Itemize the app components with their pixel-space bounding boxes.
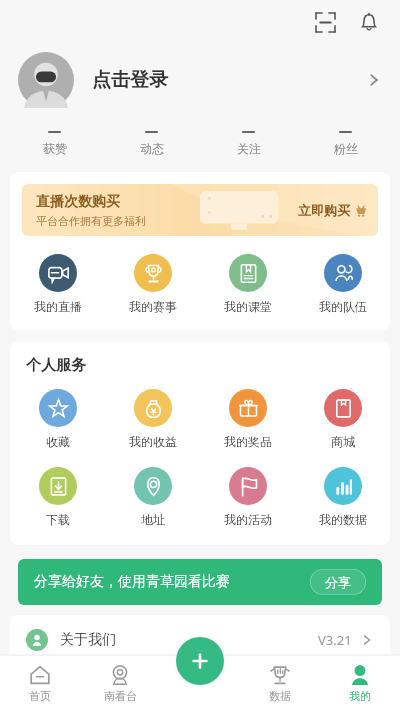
staticText: 我的 xyxy=(349,689,371,703)
staticText: 分享 xyxy=(325,574,351,590)
button[interactable]: 分享给好友，使用青草园看比赛 xyxy=(18,559,382,605)
staticText: 首页 xyxy=(29,689,51,703)
button[interactable]: 我的 xyxy=(320,655,400,711)
button[interactable]: 数据 xyxy=(240,655,320,711)
staticText: 我的收益 xyxy=(129,434,177,449)
button[interactable]: 分享 xyxy=(310,569,366,595)
button[interactable]: Notifications xyxy=(352,5,386,39)
button[interactable]: 地址 xyxy=(105,465,200,529)
staticText: 立即购买 xyxy=(298,202,350,218)
button[interactable]: 收藏 xyxy=(10,387,105,451)
staticText: 直播次数购买 xyxy=(36,193,120,211)
button[interactable]: 首页 xyxy=(0,655,80,711)
button[interactable]: 关于我们 xyxy=(10,615,390,665)
staticText: 我的赛事 xyxy=(129,299,177,314)
staticText: 南看台 xyxy=(104,689,137,703)
staticText: 我的活动 xyxy=(224,512,272,527)
button[interactable]: 动态 xyxy=(103,126,200,158)
button[interactable]: 我的队伍 xyxy=(295,252,390,316)
staticText: 分享给好友，使用青草园看比赛 xyxy=(34,573,230,591)
staticText: 粉丝 xyxy=(334,141,358,156)
staticText: V3.21 xyxy=(318,631,352,649)
button[interactable]: 我的直播 xyxy=(10,252,105,316)
button[interactable]: Add xyxy=(176,637,224,685)
staticText: 关注 xyxy=(237,141,261,156)
staticText: 我的课堂 xyxy=(224,299,272,314)
staticText: 平台合作拥有更多福利 xyxy=(36,214,146,228)
button[interactable]: 我的数据 xyxy=(295,465,390,529)
button[interactable]: 我的课堂 xyxy=(200,252,295,316)
button[interactable]: 粉丝 xyxy=(297,126,394,158)
staticText: 动态 xyxy=(140,141,164,156)
staticText: 下载 xyxy=(46,512,70,527)
staticText: 数据 xyxy=(269,689,291,703)
button[interactable]: 直播次数购买 xyxy=(22,184,378,236)
staticText: 我的队伍 xyxy=(319,299,367,314)
button[interactable]: 关注 xyxy=(200,126,297,158)
button[interactable]: 我的活动 xyxy=(200,465,295,529)
staticText: 商城 xyxy=(331,434,355,449)
staticText: 获赞 xyxy=(43,141,67,156)
staticText: 关于我们 xyxy=(60,631,116,649)
button[interactable]: 下载 xyxy=(10,465,105,529)
button[interactable]: 我的收益 xyxy=(105,387,200,451)
staticText: 地址 xyxy=(141,512,165,527)
staticText: 我的数据 xyxy=(319,512,367,527)
button[interactable]: 点击登录 xyxy=(0,44,400,116)
button[interactable]: 南看台 xyxy=(80,655,160,711)
button[interactable]: 我的奖品 xyxy=(200,387,295,451)
staticText: 收藏 xyxy=(46,434,70,449)
button[interactable]: Scan xyxy=(308,5,342,39)
button[interactable]: 我的赛事 xyxy=(105,252,200,316)
button[interactable]: 商城 xyxy=(295,387,390,451)
staticText: 我的直播 xyxy=(34,299,82,314)
staticText: 我的奖品 xyxy=(224,434,272,449)
staticText: 个人服务 xyxy=(26,356,86,375)
staticText: 点击登录 xyxy=(92,68,168,92)
button[interactable]: 获赞 xyxy=(6,126,103,158)
